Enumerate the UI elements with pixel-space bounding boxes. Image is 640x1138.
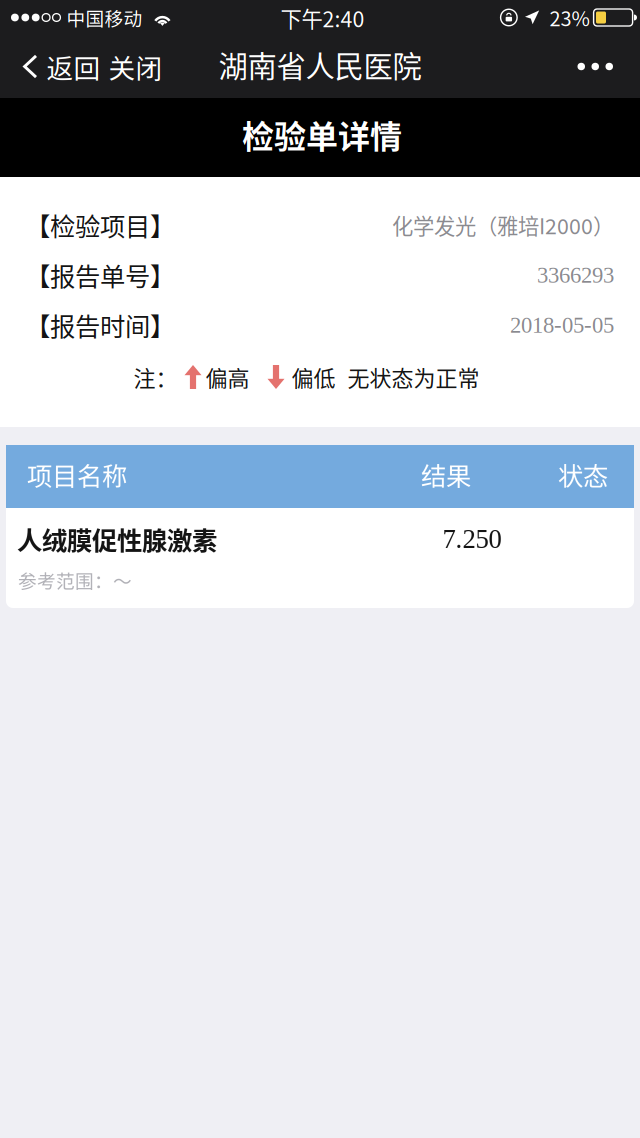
staticText: 检验单详情: [242, 111, 402, 158]
staticText: 状态: [558, 456, 608, 493]
button[interactable]: More options: [555, 35, 640, 98]
staticText: 【检验项目】: [25, 207, 175, 243]
button[interactable]: 关闭: [104, 35, 168, 98]
button[interactable]: 返回: [0, 35, 104, 98]
staticText: 返回: [47, 47, 101, 86]
staticText: 中国移动: [66, 4, 142, 31]
staticText: 关闭: [109, 47, 163, 86]
staticText: 参考范围：～: [18, 566, 132, 593]
staticText: 结果: [421, 456, 471, 493]
staticText: 【报告单号】: [25, 257, 175, 293]
staticText: 【报告时间】: [25, 307, 175, 343]
staticText: 湖南省人民医院: [218, 43, 421, 86]
staticText: 无状态为正常: [347, 361, 479, 393]
staticText: 人绒膜促性腺激素: [17, 521, 217, 557]
staticText: 3366293: [537, 262, 614, 287]
staticText: 化学发光（雅培I2000）: [392, 210, 614, 240]
staticText: 注：: [133, 361, 177, 393]
staticText: 下午2:40: [280, 3, 364, 33]
staticText: 偏低: [291, 361, 335, 393]
staticText: 2018-05-05: [510, 312, 614, 337]
staticText: 23%: [550, 3, 590, 32]
staticText: 偏高: [205, 361, 249, 393]
staticText: 项目名称: [27, 456, 127, 493]
staticText: 7.250: [442, 524, 501, 554]
